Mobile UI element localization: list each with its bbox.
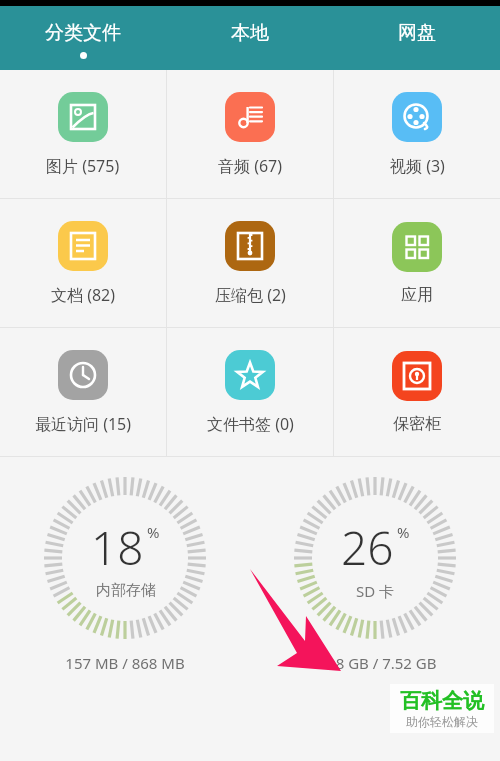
button[interactable]: 图片 (575) xyxy=(0,70,166,198)
staticText: 内部存储 xyxy=(96,581,156,600)
button[interactable]: 音频 (67) xyxy=(167,70,333,198)
button[interactable]: 保密柜 xyxy=(334,328,500,456)
staticText: 压缩包 (2) xyxy=(215,284,286,306)
staticText: 网盘 xyxy=(398,21,436,45)
staticText: 应用 xyxy=(401,285,433,305)
staticText: 音频 (67) xyxy=(218,155,283,177)
button[interactable]: 网盘 xyxy=(333,6,500,70)
button[interactable]: 分类文件 xyxy=(0,6,166,70)
button[interactable]: 压缩包 (2) xyxy=(167,199,333,327)
staticText: 图片 (575) xyxy=(46,155,120,177)
staticText: 1.98 GB / 7.52 GB xyxy=(314,653,437,673)
staticText: 保密柜 xyxy=(393,414,441,434)
staticText: 157 MB / 868 MB xyxy=(65,653,185,673)
staticText: 分类文件 xyxy=(45,21,121,45)
button[interactable]: 最近访问 (15) xyxy=(0,328,166,456)
staticText: 文档 (82) xyxy=(51,284,116,306)
staticText: 助你轻松解决 xyxy=(406,714,478,729)
staticText: % xyxy=(397,522,410,542)
button[interactable]: 本地 xyxy=(166,6,333,70)
button[interactable]: 文档 (82) xyxy=(0,199,166,327)
staticText: 百科全说 xyxy=(400,688,484,714)
staticText: 本地 xyxy=(231,21,269,45)
staticText: 最近访问 (15) xyxy=(35,413,132,435)
staticText: 26 xyxy=(341,516,394,579)
staticText: SD 卡 xyxy=(356,581,395,601)
button[interactable]: 文件书签 (0) xyxy=(167,328,333,456)
button[interactable]: 视频 (3) xyxy=(334,70,500,198)
button[interactable]: 应用 xyxy=(334,199,500,327)
staticText: % xyxy=(147,522,160,542)
staticText: 18 xyxy=(91,516,144,579)
staticText: 文件书签 (0) xyxy=(207,413,294,435)
staticText: 视频 (3) xyxy=(390,155,445,177)
